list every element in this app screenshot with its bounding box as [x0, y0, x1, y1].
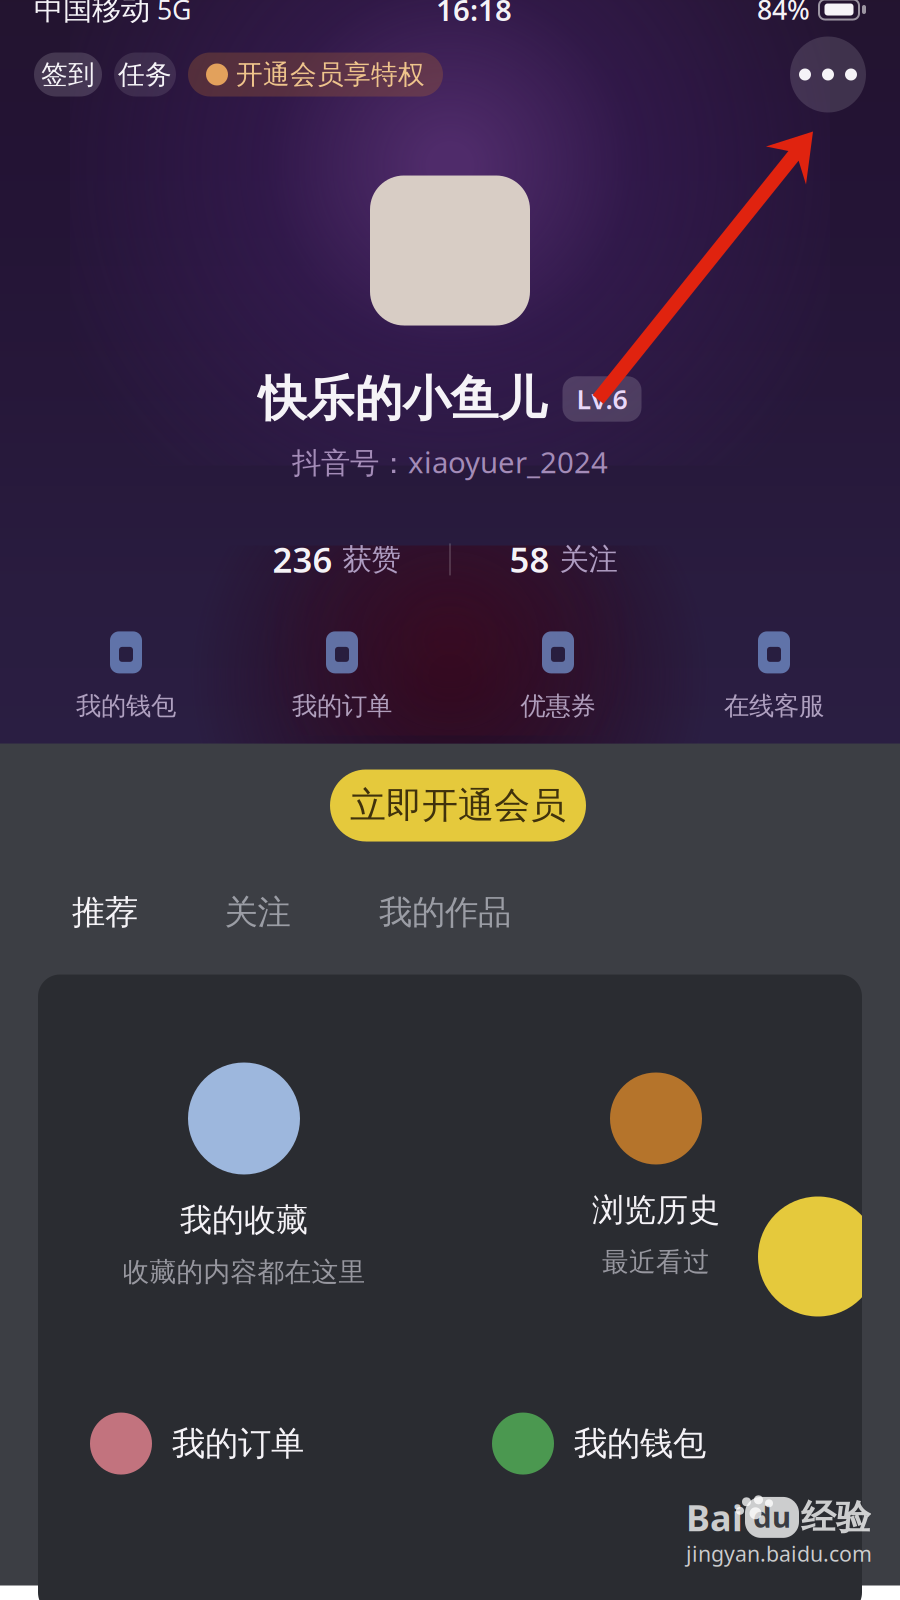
staticText: 抖音号：xiaoyuer_2024 [292, 442, 608, 481]
button[interactable]: More [790, 36, 866, 112]
staticText: 签到 [41, 58, 95, 91]
staticText: 中国移动 [34, 0, 150, 27]
staticText: 我的钱包 [76, 690, 176, 721]
staticText: 快乐的小鱼儿 [258, 369, 546, 428]
button[interactable]: 我的收藏 [38, 1062, 450, 1289]
staticText: 推荐 [72, 892, 138, 933]
staticText: 我的收藏 [180, 1200, 308, 1240]
staticText: 优惠券 [520, 690, 595, 721]
button[interactable]: Profile photo [370, 175, 530, 325]
button[interactable]: 58 [451, 539, 676, 579]
button[interactable]: 立即开通会员 [330, 769, 586, 841]
staticText: 浏览历史 [592, 1190, 720, 1230]
button[interactable]: 236 [224, 539, 449, 579]
staticText: 收藏的内容都在这里 [122, 1256, 365, 1289]
staticText: 获赞 [342, 541, 400, 577]
staticText: 5G [150, 0, 191, 27]
staticText: 在线客服 [724, 690, 824, 721]
staticText: du [753, 1497, 791, 1536]
staticText: 关注 [224, 892, 290, 933]
button[interactable]: 签到 [34, 52, 102, 96]
button[interactable]: 任务 [114, 52, 176, 96]
staticText: 关注 [559, 541, 617, 577]
button[interactable]: 在线客服 [666, 630, 882, 721]
staticText: 经验 [801, 1496, 871, 1539]
staticText: jingyan.baidu.com [686, 1539, 872, 1568]
staticText: 16:18 [436, 0, 512, 29]
button[interactable]: 推荐 [50, 886, 160, 938]
staticText: 立即开通会员 [350, 783, 566, 828]
button[interactable]: 关注 [160, 886, 355, 938]
button[interactable]: 我的订单 [48, 1413, 450, 1475]
button[interactable]: 优惠券 [450, 630, 666, 721]
staticText: 84% [757, 0, 810, 27]
staticText: Lv.6 [576, 381, 627, 417]
button[interactable]: 浏览历史 [450, 1062, 862, 1279]
staticText: Bai [686, 1493, 743, 1541]
staticText: 我的钱包 [574, 1423, 706, 1464]
staticText: 我的作品 [379, 892, 511, 933]
staticText: 我的订单 [172, 1423, 304, 1464]
button[interactable]: 我的作品 [355, 886, 535, 938]
staticText: 任务 [118, 58, 172, 91]
button[interactable]: 我的钱包 [18, 630, 234, 721]
button[interactable]: 我的钱包 [450, 1413, 852, 1475]
staticText: 236 [272, 536, 332, 582]
staticText: 我的订单 [292, 690, 392, 721]
staticText: 开通会员享特权 [236, 58, 425, 91]
staticText: 最近看过 [602, 1246, 710, 1279]
button[interactable]: 开通会员享特权 [188, 52, 443, 96]
staticText: 58 [509, 536, 549, 582]
button[interactable]: 我的订单 [234, 630, 450, 721]
